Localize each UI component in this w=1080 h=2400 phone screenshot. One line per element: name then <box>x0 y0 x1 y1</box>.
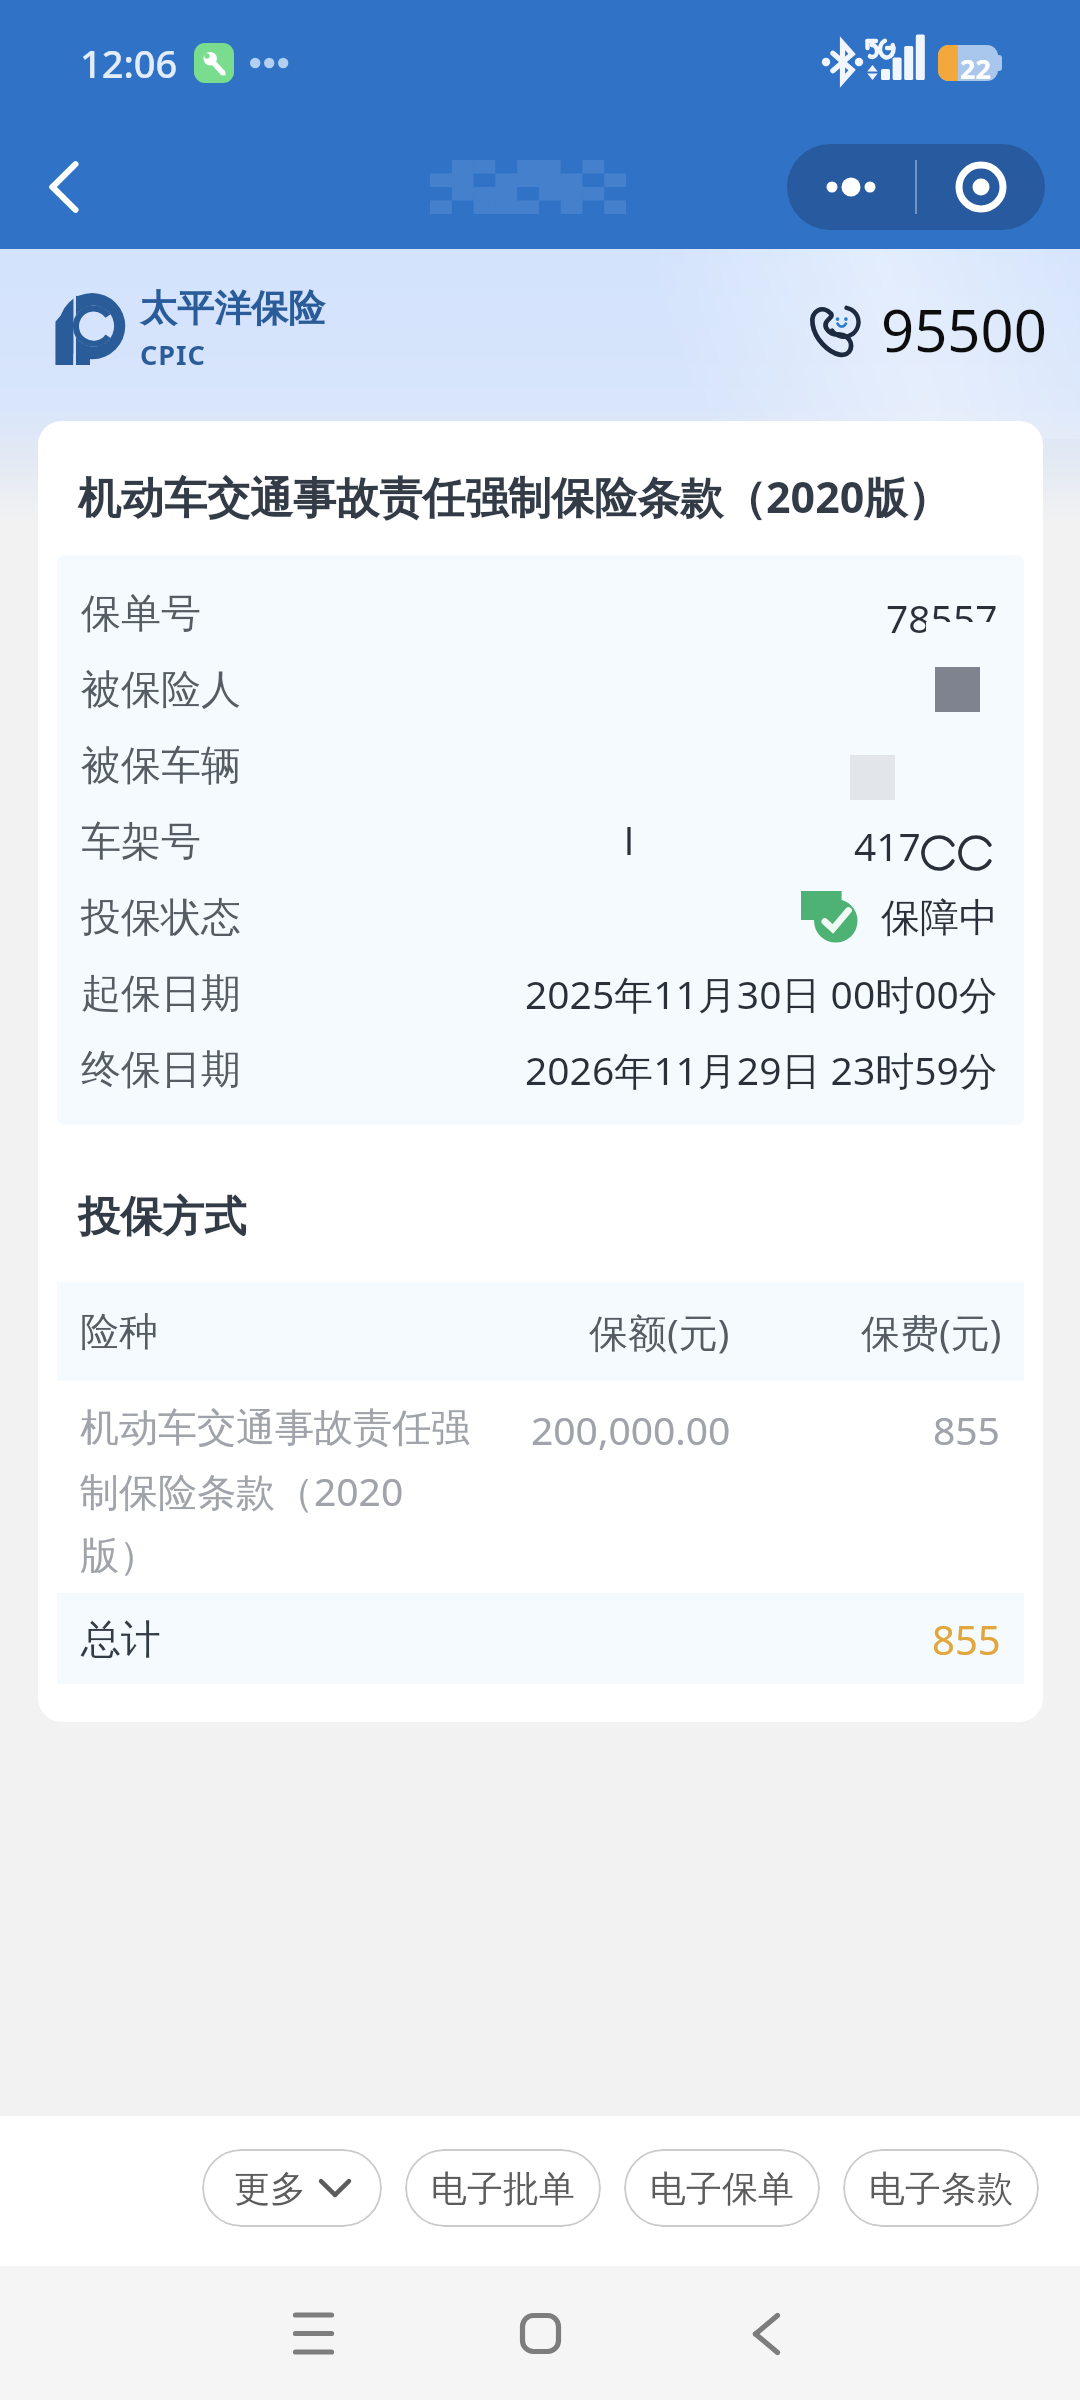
staticText: 太平洋保险 <box>140 285 325 332</box>
staticText: 被保险人 <box>81 664 241 714</box>
button[interactable]: 电子条款 <box>843 2149 1039 2227</box>
staticText: 95500 <box>881 290 1047 369</box>
staticText: 12:06 <box>80 37 178 89</box>
staticText: 855 <box>933 1403 1000 1456</box>
staticText: 险种 <box>80 1307 158 1356</box>
staticText: 200,000.00 <box>531 1403 731 1456</box>
button[interactable]: Home <box>484 2277 597 2390</box>
button[interactable]: 更多 <box>202 2149 382 2227</box>
staticText: 更多 <box>234 2166 306 2211</box>
staticText: 保费(元) <box>861 1305 1002 1358</box>
staticText: 2026年11月29日 23时59分 <box>525 1043 998 1096</box>
staticText: 78557 <box>886 591 998 635</box>
button[interactable]: Recent apps <box>257 2277 370 2390</box>
staticText: 起保日期 <box>81 968 241 1018</box>
staticText: 投保方式 <box>78 1191 246 1244</box>
button[interactable]: Back <box>710 2277 823 2390</box>
staticText: 855 <box>932 1612 1001 1666</box>
staticText: 22 <box>960 50 991 87</box>
staticText: 被保车辆 <box>81 740 241 790</box>
staticText: 终保日期 <box>81 1044 241 1094</box>
staticText: 电子条款 <box>869 2166 1013 2211</box>
staticText: 机动车交通事故责任强制保险条款（2020版） <box>78 467 951 526</box>
staticText: 总计 <box>81 1614 161 1664</box>
staticText: 机动车交通事故责任强制保险条款（2020版） <box>80 1403 480 1581</box>
button[interactable]: More options <box>787 144 915 230</box>
button[interactable]: Close mini program <box>917 144 1045 230</box>
button[interactable]: Back <box>22 145 106 229</box>
button[interactable]: 电子批单 <box>405 2149 601 2227</box>
button[interactable]: Call 95500 <box>807 290 1047 369</box>
staticText: 电子批单 <box>431 2166 575 2211</box>
staticText: 车架号 <box>81 816 201 866</box>
staticText: 2025年11月30日 00时00分 <box>525 967 998 1020</box>
staticText: 投保状态 <box>81 892 241 942</box>
staticText: 保障中 <box>881 893 998 942</box>
staticText: CPIC <box>140 336 206 373</box>
staticText: 417 <box>854 819 921 863</box>
staticText: 电子保单 <box>650 2166 794 2211</box>
staticText: 保单号 <box>81 588 201 638</box>
staticText: 保额(元) <box>589 1305 730 1358</box>
button[interactable]: 电子保单 <box>624 2149 820 2227</box>
